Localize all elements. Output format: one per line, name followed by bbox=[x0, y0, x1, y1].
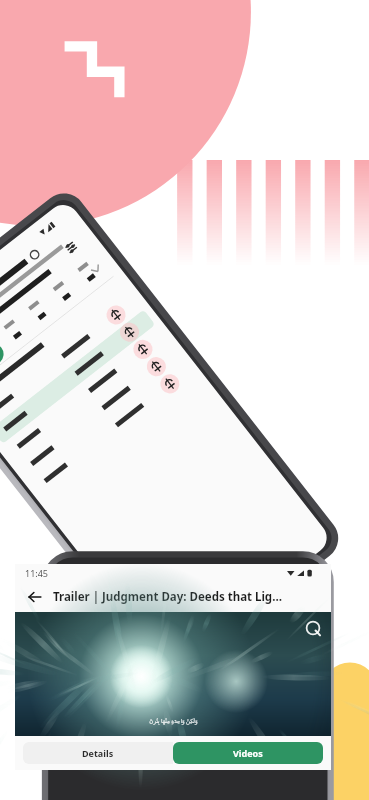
button[interactable]: Channel logo bbox=[305, 620, 321, 636]
button[interactable]: Channel logo bbox=[15, 612, 331, 736]
staticText: 11:45 bbox=[25, 567, 49, 579]
button[interactable]: Details bbox=[23, 742, 173, 764]
button[interactable]: Videos bbox=[173, 742, 323, 764]
staticText: Videos bbox=[233, 747, 263, 759]
staticText: وَلَكِنْ وَاحِدَةٍ مِنْهَا بِثُرنْ bbox=[149, 717, 198, 724]
staticText: Details bbox=[82, 747, 114, 759]
button[interactable]: Back bbox=[23, 585, 47, 609]
staticText: Trailer | Judgment Day: Deeds that Lig… bbox=[53, 589, 282, 605]
